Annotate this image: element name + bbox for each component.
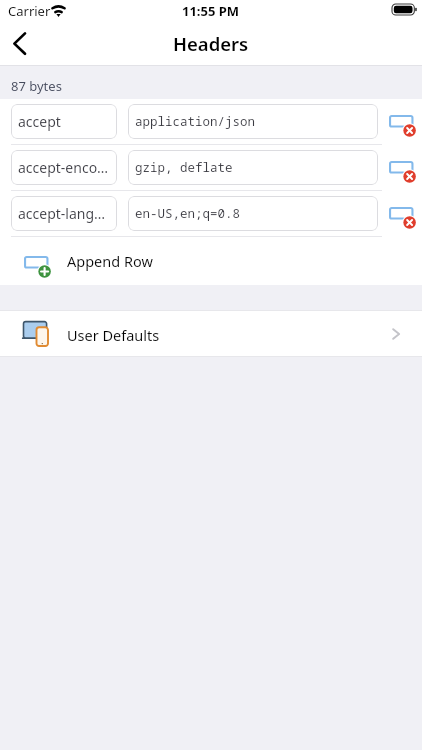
staticText: en-US,en;q=0.8 — [135, 205, 241, 222]
staticText: Append Row — [67, 251, 153, 271]
button[interactable]: accept-lang… — [0, 191, 422, 237]
button[interactable]: Delete row — [384, 109, 417, 135]
button[interactable]: User Defaults — [0, 310, 422, 357]
staticText: Headers — [173, 31, 249, 56]
staticText: accept-enco… — [18, 158, 109, 177]
staticText: 11:55 PM — [182, 2, 240, 20]
button[interactable]: Append Row — [0, 237, 422, 285]
button[interactable]: Delete row — [384, 155, 417, 181]
button[interactable]: Back — [0, 26, 44, 65]
staticText: accept-lang… — [18, 204, 106, 223]
button[interactable]: Append Row — [18, 249, 158, 275]
button[interactable]: accept — [0, 99, 422, 145]
button[interactable]: accept-enco… — [0, 145, 422, 191]
staticText: 87 bytes — [11, 77, 62, 95]
staticText: Carrier — [8, 2, 51, 20]
staticText: accept — [18, 112, 61, 131]
staticText: application/json — [135, 113, 256, 130]
staticText: User Defaults — [67, 325, 160, 345]
staticText: gzip, deflate — [135, 159, 233, 176]
button[interactable]: Delete row — [384, 201, 417, 227]
